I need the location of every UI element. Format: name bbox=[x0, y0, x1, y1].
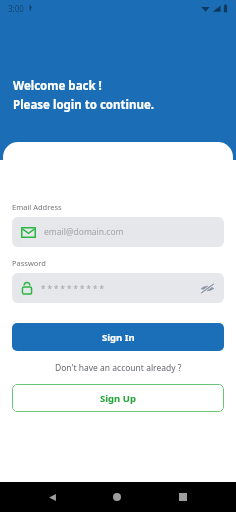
staticText: Email Address bbox=[12, 202, 62, 212]
button[interactable]: Home bbox=[104, 484, 130, 510]
staticText: Sign Up bbox=[100, 392, 136, 405]
staticText: Don't have an account already ? bbox=[55, 362, 182, 374]
button[interactable]: Show password bbox=[197, 278, 217, 298]
staticText: Please login to continue. bbox=[13, 97, 154, 113]
staticText: Password bbox=[12, 258, 46, 268]
staticText: * * * * * * * * * * bbox=[41, 283, 104, 294]
staticText: Welcome back ! bbox=[13, 78, 102, 94]
staticText: 3:00 bbox=[8, 3, 24, 14]
staticText: Sign In bbox=[102, 331, 135, 344]
button[interactable]: Sign Up bbox=[12, 384, 224, 412]
button[interactable]: Sign In bbox=[12, 323, 224, 351]
button[interactable]: Recent apps bbox=[170, 484, 196, 510]
button[interactable]: Back bbox=[39, 484, 65, 510]
button[interactable]: * * * * * * * * * * bbox=[12, 273, 224, 303]
button[interactable]: email@domain.com bbox=[12, 217, 224, 247]
staticText: email@domain.com bbox=[44, 226, 124, 238]
